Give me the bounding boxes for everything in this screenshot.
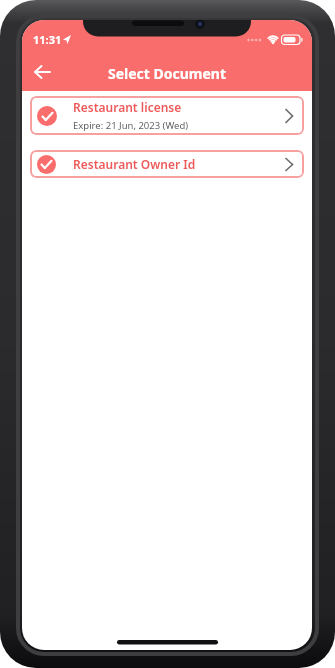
staticText: Expire: 21 Jun, 2023 (Wed)	[73, 119, 189, 132]
staticText: 11:31	[33, 32, 62, 47]
staticText: Select Document	[22, 64, 312, 83]
staticText: Restaurant license	[73, 99, 182, 115]
button[interactable]: Restaurant Owner Id	[30, 150, 304, 178]
staticText: Restaurant Owner Id	[73, 156, 196, 172]
button[interactable]	[24, 58, 60, 86]
button[interactable]: Restaurant license	[30, 96, 304, 135]
